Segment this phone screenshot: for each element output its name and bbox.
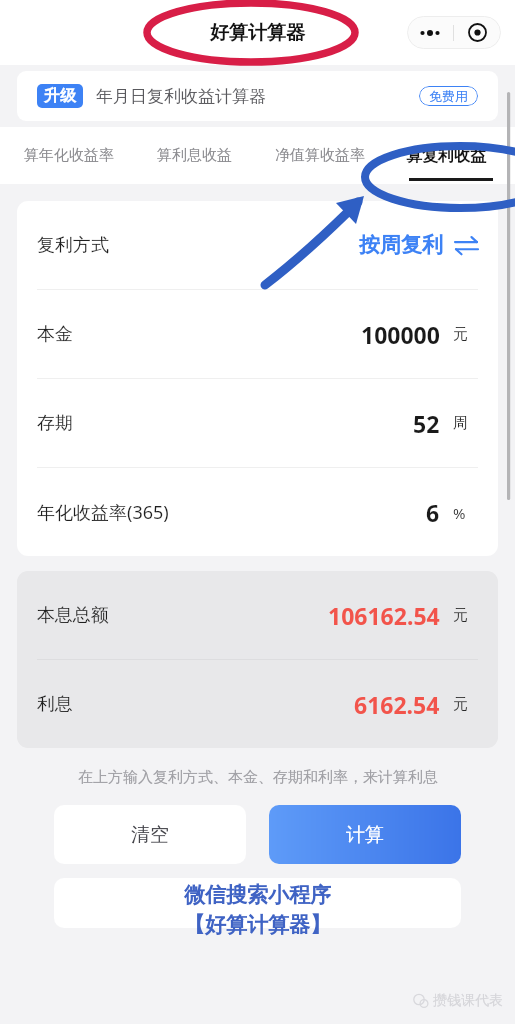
staticText: 微信搜索小程序 【好算计算器】: [184, 882, 331, 938]
staticText: 52: [413, 408, 440, 439]
staticText: 算利息收益: [157, 146, 232, 165]
staticText: 免费用: [429, 88, 468, 104]
staticText: 利息: [37, 693, 73, 716]
button[interactable]: 存期: [17, 379, 498, 467]
button[interactable]: [54, 878, 461, 928]
staticText: 本金: [37, 323, 73, 346]
button[interactable]: 算年化收益率: [6, 127, 131, 184]
staticText: 元: [453, 606, 468, 625]
button[interactable]: 复利方式: [17, 201, 498, 289]
staticText: 清空: [131, 823, 169, 847]
staticText: 存期: [37, 412, 73, 435]
staticText: %: [453, 503, 466, 523]
staticText: 元: [453, 695, 468, 714]
staticText: 算年化收益率: [24, 146, 114, 165]
staticText: 6162.54: [354, 689, 440, 720]
button[interactable]: 本息总额: [17, 571, 498, 659]
staticText: 元: [453, 325, 468, 344]
staticText: 升级: [44, 86, 76, 106]
staticText: 本息总额: [37, 604, 109, 627]
staticText: 好算计算器: [210, 21, 305, 45]
staticText: 在上方输入复利方式、本金、存期和利率，来计算利息: [78, 768, 438, 787]
staticText: 攒钱课代表: [433, 992, 503, 1010]
staticText: 净值算收益率: [275, 146, 365, 165]
staticText: 计算: [346, 823, 384, 847]
button[interactable]: Close: [454, 16, 501, 49]
button[interactable]: 清空: [54, 805, 246, 864]
staticText: 复利方式: [37, 234, 109, 257]
staticText: 106162.54: [328, 600, 440, 631]
staticText: 6: [426, 497, 440, 528]
staticText: 按周复利: [359, 232, 443, 258]
staticText: 算复利收益: [406, 146, 486, 166]
button[interactable]: 年化收益率(365): [17, 468, 498, 556]
button[interactable]: 本金: [17, 290, 498, 378]
button[interactable]: 计算: [269, 805, 461, 864]
button[interactable]: 算利息收益: [131, 127, 257, 184]
button[interactable]: 升级: [17, 71, 498, 121]
button[interactable]: 算复利收益: [383, 127, 509, 184]
staticText: 100000: [361, 319, 440, 350]
staticText: 年月日复利收益计算器: [96, 86, 266, 107]
button[interactable]: More: [407, 16, 453, 49]
staticText: 周: [453, 414, 468, 433]
staticText: 年化收益率(365): [37, 500, 169, 525]
button[interactable]: 净值算收益率: [257, 127, 383, 184]
button[interactable]: 利息: [17, 660, 498, 748]
